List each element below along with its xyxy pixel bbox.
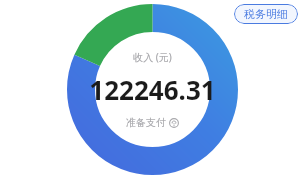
other: Help about pending payment (169, 118, 179, 128)
staticText: 税务明细 (244, 7, 288, 21)
button[interactable]: 税务明细 (234, 4, 298, 24)
staticText: 收入 (元) (133, 50, 172, 64)
button[interactable]: 准备支付 (126, 116, 179, 129)
staticText: 准备支付 (126, 116, 166, 129)
staticText: 122246.31 (89, 72, 216, 107)
